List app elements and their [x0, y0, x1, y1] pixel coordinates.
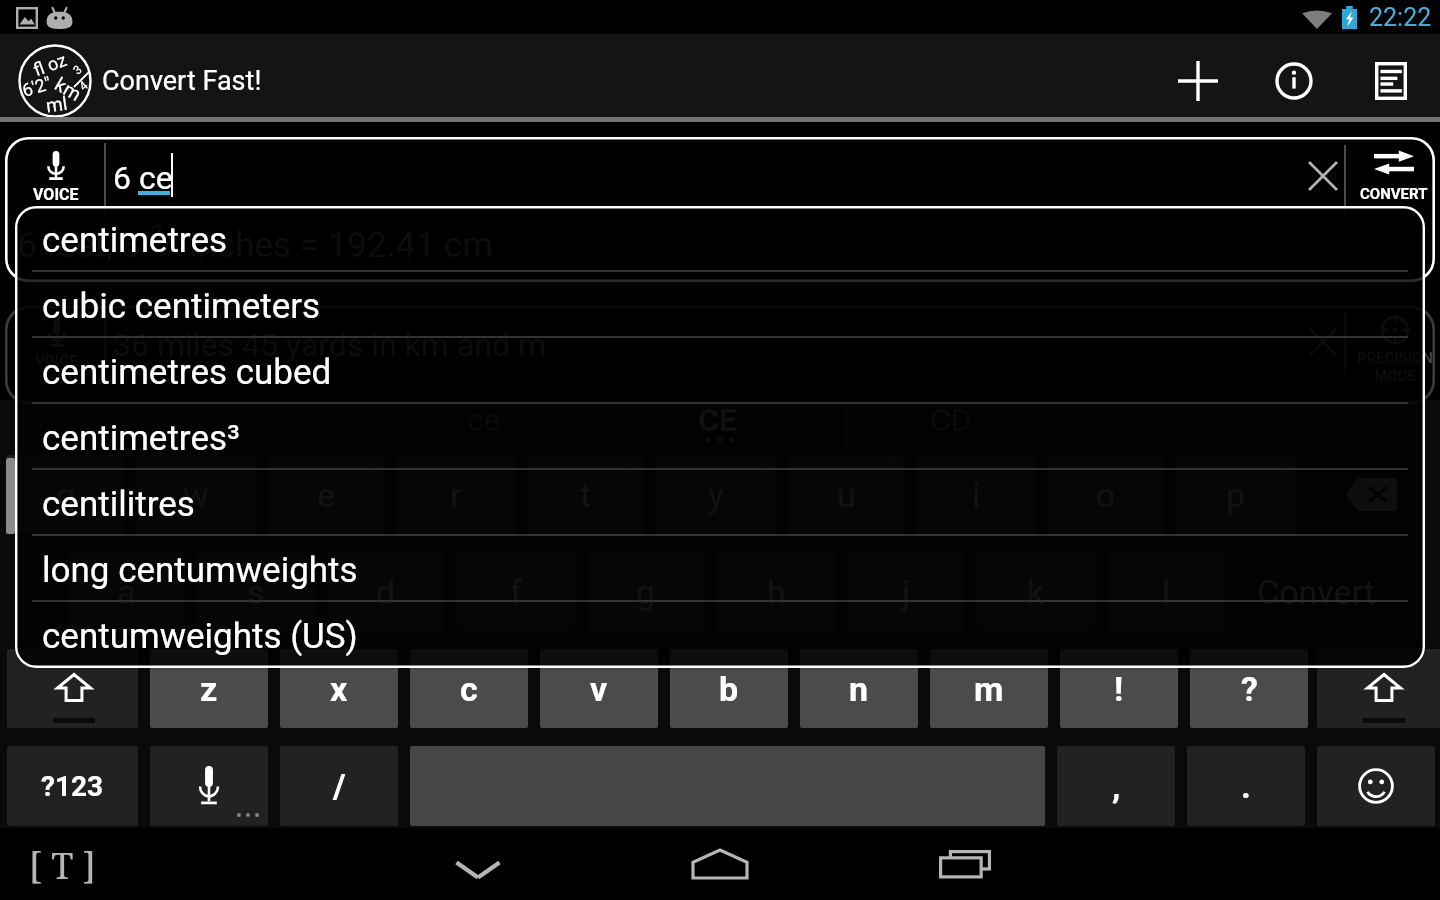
staticText: 36 miles 45 yards in km and m [113, 326, 546, 364]
button[interactable]: Precision mode [1349, 308, 1440, 392]
staticText: 5 [628, 458, 637, 477]
button[interactable]: centimetres cubed [15, 338, 1425, 404]
staticText: 7 [888, 458, 897, 477]
staticText: CONVERT [1360, 185, 1428, 203]
button[interactable]: a [67, 552, 185, 631]
button[interactable]: r [397, 455, 515, 534]
button[interactable]: Hide keyboard [408, 828, 548, 900]
staticText: 4 [498, 458, 507, 477]
staticText: km [51, 73, 86, 105]
staticText: 22:22 [1369, 3, 1432, 32]
button[interactable]: o [1047, 455, 1165, 534]
staticText: r [450, 475, 462, 515]
button[interactable]: Clear [1281, 141, 1365, 211]
staticText: j [902, 572, 911, 612]
button[interactable]: Add [1150, 39, 1246, 123]
button[interactable]: ?123 [7, 746, 138, 826]
button[interactable]: / [280, 746, 398, 826]
button[interactable]: Voice typing [150, 746, 268, 826]
staticText: ?123 [41, 770, 104, 803]
staticText: f [510, 572, 522, 612]
button[interactable]: Emoji [1317, 746, 1435, 826]
staticText: p [1226, 475, 1246, 515]
button[interactable]: Info [1246, 39, 1342, 123]
staticText: m [974, 669, 1004, 709]
button[interactable]: z [150, 649, 268, 728]
staticText: b [719, 669, 739, 709]
button[interactable]: Backspace [1307, 455, 1435, 534]
staticText: 6 [758, 458, 767, 477]
staticText: Convert Fast! [102, 65, 262, 97]
button[interactable]: m [930, 649, 1048, 728]
staticText: Convert [1257, 572, 1376, 612]
button[interactable]: centimetres [15, 206, 1425, 272]
button[interactable]: Convert [1197, 552, 1435, 631]
button[interactable]: v [540, 649, 658, 728]
staticText: ! [1114, 669, 1124, 709]
button[interactable]: u [787, 455, 905, 534]
button[interactable]: ? [1190, 649, 1308, 728]
staticText: 4 [76, 78, 91, 94]
button[interactable]: Shift [7, 649, 138, 728]
staticText: ? [1241, 669, 1258, 709]
button[interactable]: s [197, 552, 315, 631]
staticText: 3 [151, 221, 163, 246]
staticText: y [708, 475, 725, 515]
staticText: x [330, 669, 348, 709]
button[interactable]: c [410, 649, 528, 728]
button[interactable]: k [977, 552, 1095, 631]
staticText: , [1112, 766, 1121, 806]
button[interactable]: Shift [1317, 649, 1440, 728]
button[interactable]: fl oz [0, 37, 1440, 125]
button[interactable]: e [267, 455, 385, 534]
staticText: w [183, 475, 209, 515]
button[interactable]: . [1187, 746, 1305, 826]
button[interactable]: j [847, 552, 965, 631]
button[interactable]: f [457, 552, 575, 631]
button[interactable]: h [717, 552, 835, 631]
button[interactable]: Voice input [13, 141, 99, 213]
staticText: VOICE [35, 352, 78, 370]
staticText: PRECISION [1357, 349, 1433, 367]
staticText: / [333, 766, 346, 806]
button[interactable]: centumweights (US) [15, 602, 1425, 668]
button[interactable]: Recent apps [895, 828, 1035, 900]
button[interactable]: centilitres [15, 470, 1425, 536]
staticText: d [376, 572, 396, 612]
staticText: inches = 192.41 cm [189, 225, 493, 266]
button[interactable]: , [1057, 746, 1175, 826]
button[interactable]: b [670, 649, 788, 728]
staticText: MODE [1374, 367, 1416, 385]
button[interactable]: t [527, 455, 645, 534]
button[interactable]: Convert [1349, 141, 1439, 211]
button[interactable]: d [327, 552, 445, 631]
staticText: 1 [108, 458, 117, 477]
button[interactable]: Voice input [13, 310, 99, 378]
staticText: h [767, 572, 786, 612]
button[interactable]: y [657, 455, 775, 534]
button[interactable]: q [7, 455, 125, 534]
button[interactable]: History [1342, 39, 1440, 123]
button[interactable]: ! [1060, 649, 1178, 728]
button[interactable]: w [137, 455, 255, 534]
staticText: 6 ce [113, 159, 173, 197]
button[interactable]: n [800, 649, 918, 728]
button[interactable]: x [280, 649, 398, 728]
button[interactable]: long centumweights [15, 536, 1425, 602]
staticText: fl oz [30, 49, 69, 80]
button[interactable]: cubic centimeters [15, 272, 1425, 338]
button[interactable]: Clear [1281, 308, 1365, 376]
staticText: . [1241, 766, 1251, 806]
staticText: g [636, 572, 656, 612]
button[interactable]: i [917, 455, 1035, 534]
staticText: centumweights (US) [42, 616, 358, 657]
button[interactable]: l [1107, 552, 1225, 631]
staticText: 2 [238, 458, 247, 477]
button[interactable]: g [587, 552, 705, 631]
button[interactable]: p [1177, 455, 1295, 534]
button[interactable]: Home [650, 828, 790, 900]
staticText: i [972, 475, 981, 515]
button[interactable]: centimetres³ [15, 404, 1425, 470]
staticText: t [580, 475, 592, 515]
